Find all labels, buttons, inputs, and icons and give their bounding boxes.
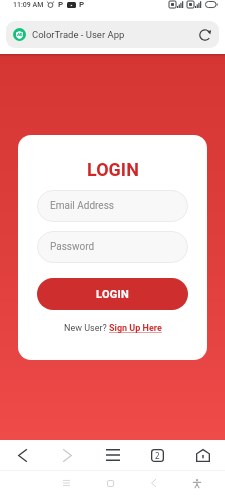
- staticText: New User?: [64, 323, 109, 334]
- button[interactable]: Forward: [45, 440, 90, 470]
- button[interactable]: Sign Up Here: [109, 323, 162, 334]
- button[interactable]: Reload page: [196, 26, 214, 44]
- staticText: 11:09 AM: [13, 1, 44, 9]
- button[interactable]: Back: [144, 474, 162, 492]
- staticText: P: [79, 0, 85, 9]
- button[interactable]: Back: [0, 440, 45, 470]
- button[interactable]: Accessibility: [188, 474, 206, 492]
- button[interactable]: LOGIN: [37, 278, 188, 310]
- button[interactable]: Password: [37, 231, 188, 263]
- staticText: LOGIN: [87, 159, 139, 180]
- button[interactable]: Site information: [13, 28, 26, 41]
- staticText: Email Address: [50, 200, 114, 212]
- staticText: Password: [50, 241, 95, 253]
- staticText: P: [58, 0, 64, 9]
- button[interactable]: Home: [180, 440, 225, 470]
- button[interactable]: Email Address: [37, 190, 188, 222]
- button[interactable]: Recent apps: [57, 474, 75, 492]
- staticText: LOGIN: [96, 288, 130, 301]
- staticText: 2: [155, 450, 160, 461]
- button[interactable]: Tabs: [135, 440, 180, 470]
- button[interactable]: Home: [101, 474, 119, 492]
- staticText: Sign Up Here: [109, 323, 162, 334]
- staticText: ColorTrade - User App: [32, 29, 125, 40]
- button[interactable]: Menu: [90, 440, 135, 470]
